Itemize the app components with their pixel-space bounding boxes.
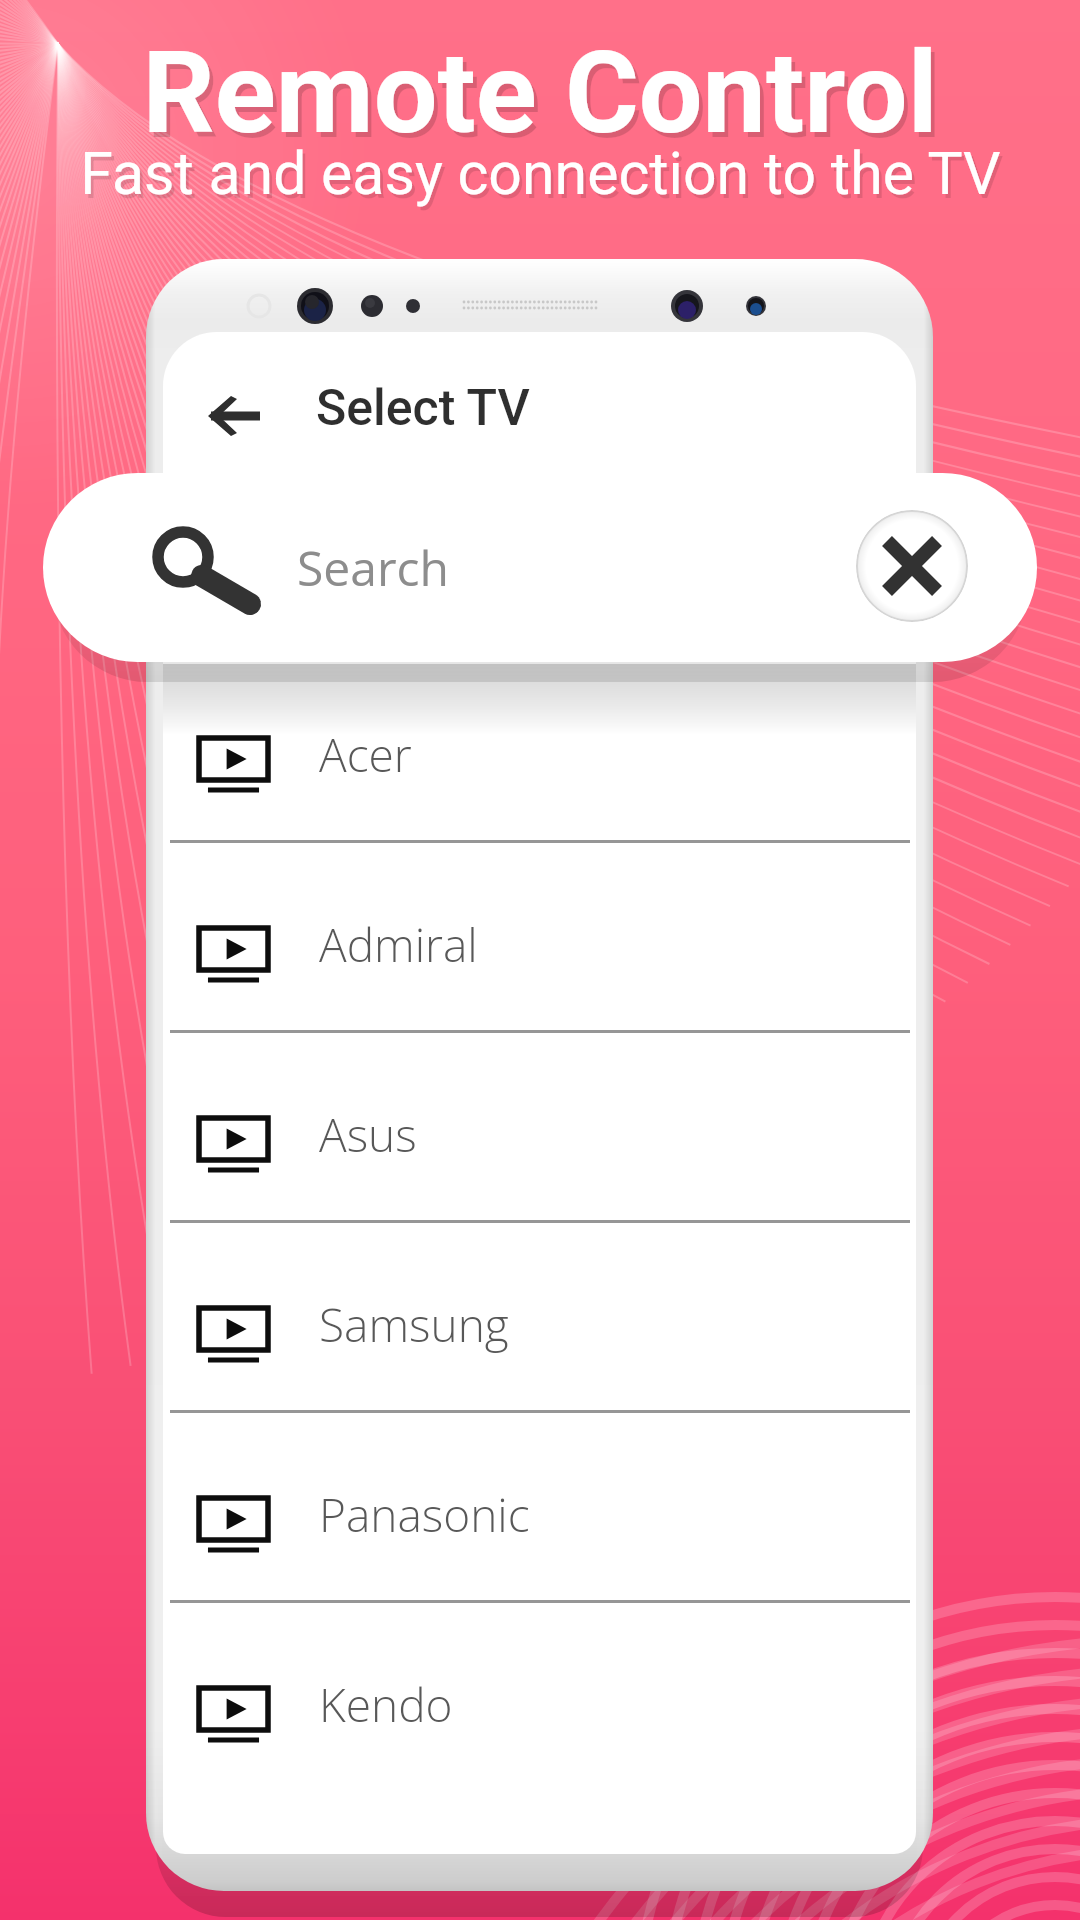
button[interactable]: Asus	[163, 1033, 916, 1220]
staticText: Remote Control	[146, 32, 942, 164]
staticText: Search	[297, 535, 449, 600]
staticText: Panasonic	[319, 1483, 530, 1546]
staticText: Admiral	[319, 913, 478, 976]
button[interactable]: Kendo	[163, 1603, 916, 1790]
staticText: Remote Control	[142, 27, 938, 159]
staticText: Fast and easy connection to the TV	[83, 143, 1004, 212]
staticText: Acer	[319, 723, 412, 786]
button[interactable]: Back	[193, 375, 275, 457]
staticText: Select TV	[316, 379, 530, 438]
button[interactable]: Samsung	[163, 1223, 916, 1410]
button[interactable]: Admiral	[163, 843, 916, 1030]
button[interactable]: Panasonic	[163, 1413, 916, 1600]
button[interactable]: Search	[43, 473, 1037, 662]
button[interactable]: Acer	[163, 653, 916, 840]
staticText: Kendo	[319, 1673, 453, 1736]
staticText: Fast and easy connection to the TV	[80, 139, 1001, 208]
button[interactable]: Clear search	[856, 510, 968, 622]
staticText: Asus	[319, 1103, 417, 1166]
staticText: Samsung	[319, 1293, 509, 1356]
